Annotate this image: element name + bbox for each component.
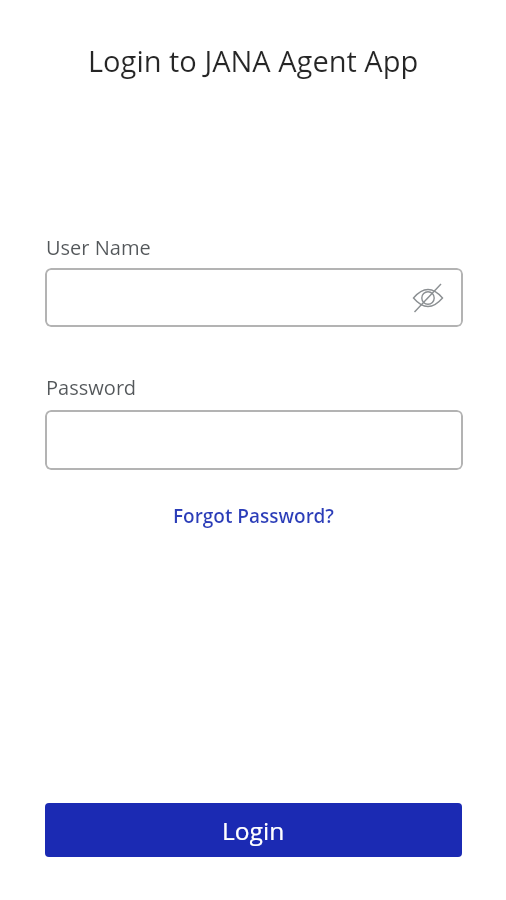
staticText: Login to JANA Agent App	[88, 41, 419, 80]
staticText: Login	[222, 814, 285, 847]
button[interactable]	[45, 410, 463, 470]
button[interactable]: Login	[45, 803, 462, 857]
staticText: Password	[46, 374, 136, 401]
button[interactable]	[45, 268, 463, 327]
button[interactable]: Forgot Password?	[173, 503, 334, 529]
staticText: User Name	[46, 234, 151, 261]
